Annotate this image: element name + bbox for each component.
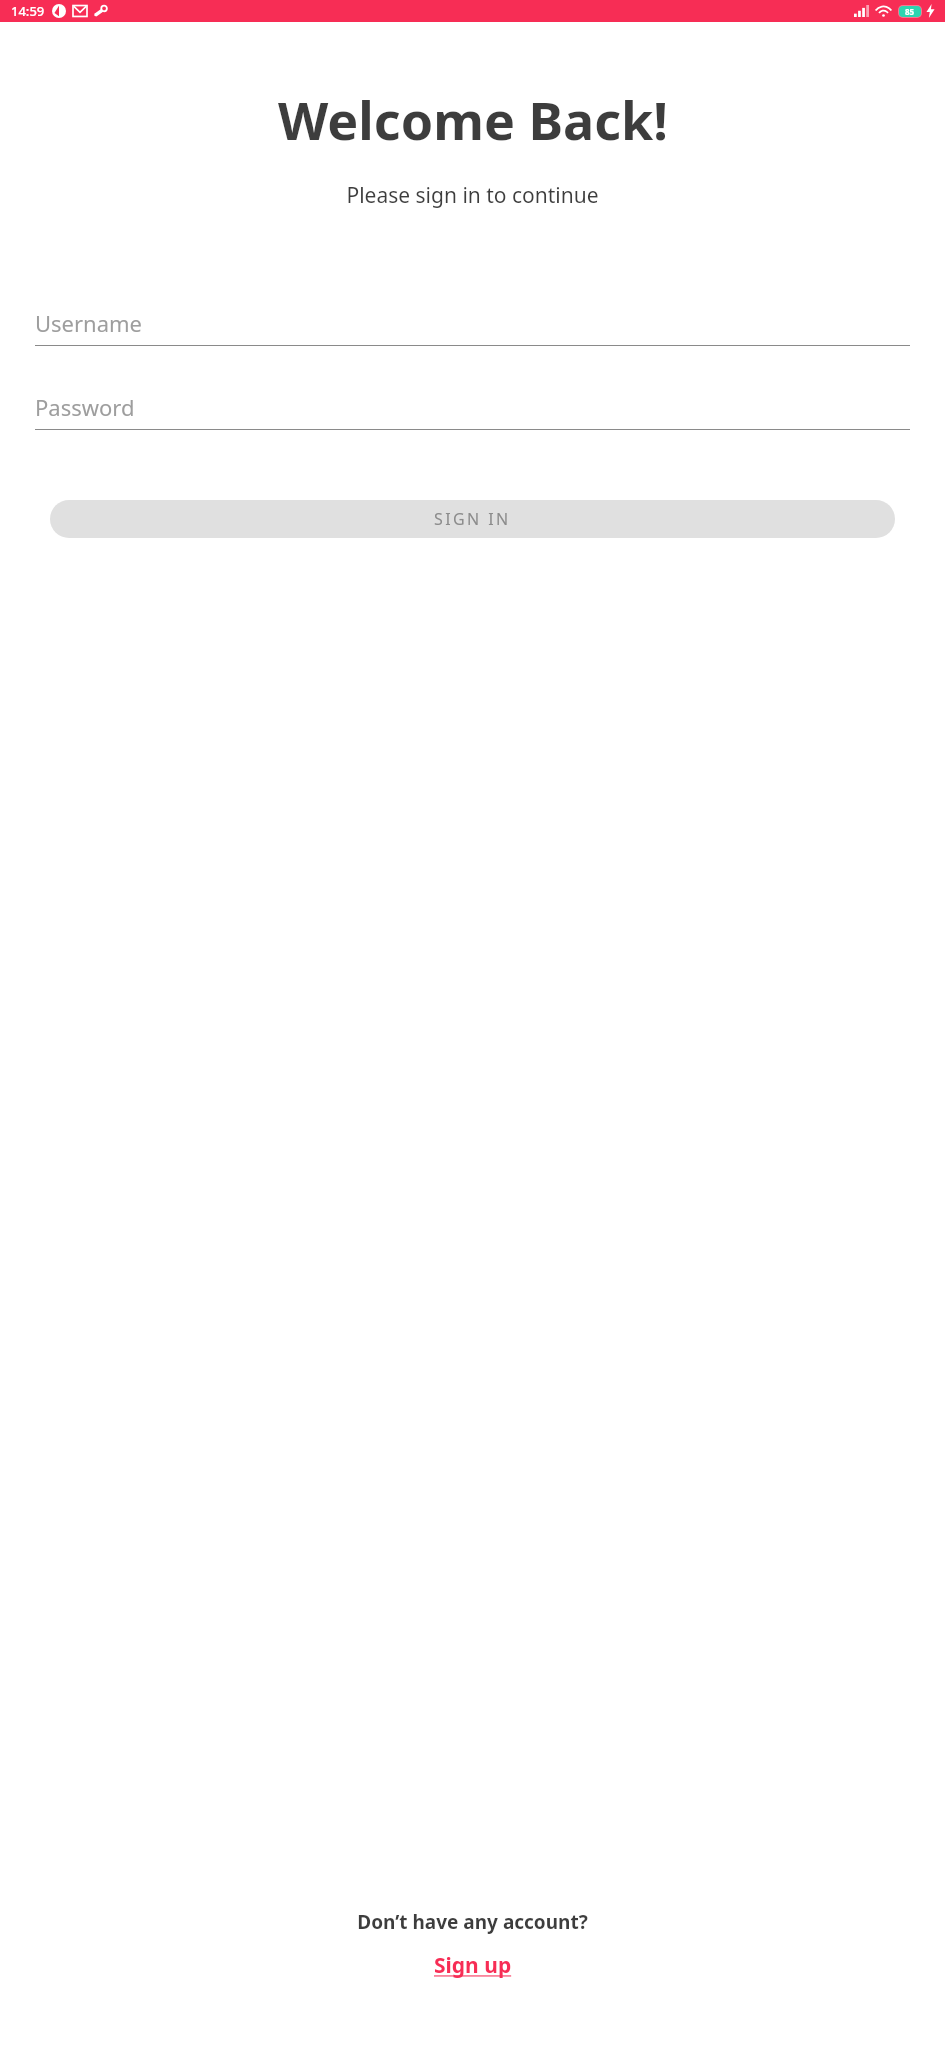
staticText: 85 bbox=[905, 6, 915, 17]
staticText: Username bbox=[35, 308, 143, 338]
button[interactable]: SIGN IN bbox=[50, 500, 895, 538]
staticText: 14:59 bbox=[11, 2, 45, 20]
staticText: Welcome Back! bbox=[278, 84, 668, 155]
button[interactable]: Username bbox=[35, 306, 910, 346]
staticText: Please sign in to continue bbox=[346, 181, 599, 210]
staticText: Don’t have any account? bbox=[357, 1909, 588, 1935]
button[interactable]: Sign up bbox=[428, 1949, 518, 1982]
staticText: Password bbox=[35, 392, 135, 422]
button[interactable]: Password bbox=[35, 390, 910, 430]
staticText: Sign up bbox=[434, 1951, 512, 1980]
staticText: SIGN IN bbox=[434, 508, 511, 530]
